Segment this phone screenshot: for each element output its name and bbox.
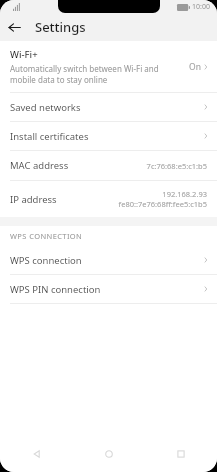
staticText: WPS PIN connection bbox=[10, 283, 202, 296]
staticText: Wi-Fi+ bbox=[10, 48, 38, 61]
button[interactable]: MAC address bbox=[0, 151, 217, 180]
staticText: WPS CONNECTION bbox=[10, 231, 83, 241]
staticText: 192.168.2.93 bbox=[162, 189, 207, 199]
staticText: fe80::7e76:68ff:fee5:c1b5 bbox=[118, 199, 207, 209]
staticText: IP address bbox=[10, 193, 57, 206]
button[interactable]: IP address bbox=[0, 181, 217, 217]
staticText: Settings bbox=[35, 18, 86, 36]
button[interactable]: WPS connection bbox=[0, 246, 217, 274]
staticText: Install certificates bbox=[10, 130, 202, 143]
staticText: On bbox=[189, 61, 201, 73]
staticText: 7c:76:68:e5:c1:b5 bbox=[146, 161, 207, 171]
button[interactable]: Back bbox=[0, 13, 28, 41]
staticText: MAC address bbox=[10, 159, 69, 172]
staticText: WPS connection bbox=[10, 254, 202, 267]
button[interactable]: WPS PIN connection bbox=[0, 275, 217, 303]
staticText: 10:00 bbox=[192, 2, 210, 12]
button[interactable]: Wi-Fi+ bbox=[0, 41, 217, 92]
staticText: Automatically switch between Wi-Fi and m… bbox=[10, 63, 185, 85]
button[interactable]: Install certificates bbox=[0, 122, 217, 150]
button[interactable]: Back bbox=[0, 436, 73, 472]
staticText: Saved networks bbox=[10, 101, 202, 114]
button[interactable]: Saved networks bbox=[0, 93, 217, 121]
button[interactable]: Recents bbox=[145, 436, 217, 472]
